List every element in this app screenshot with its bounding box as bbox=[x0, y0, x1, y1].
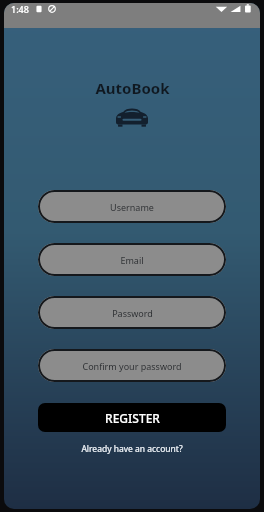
button[interactable]: Confirm your password bbox=[38, 349, 226, 382]
button[interactable]: Username bbox=[38, 190, 226, 223]
button[interactable]: Email bbox=[38, 243, 226, 276]
staticText: Username bbox=[110, 201, 154, 213]
staticText: 1:48 bbox=[11, 3, 29, 15]
staticText: Already have an account? bbox=[81, 443, 183, 455]
staticText: AutoBook bbox=[95, 78, 170, 98]
staticText: Email bbox=[120, 254, 144, 266]
button[interactable]: REGISTER bbox=[38, 403, 226, 432]
button[interactable]: Password bbox=[38, 296, 226, 329]
staticText: REGISTER bbox=[105, 410, 160, 426]
staticText: Password bbox=[112, 307, 153, 319]
button[interactable]: Already have an account? bbox=[77, 441, 187, 457]
other: Car logo bbox=[115, 106, 149, 128]
staticText: Confirm your password bbox=[82, 360, 182, 372]
